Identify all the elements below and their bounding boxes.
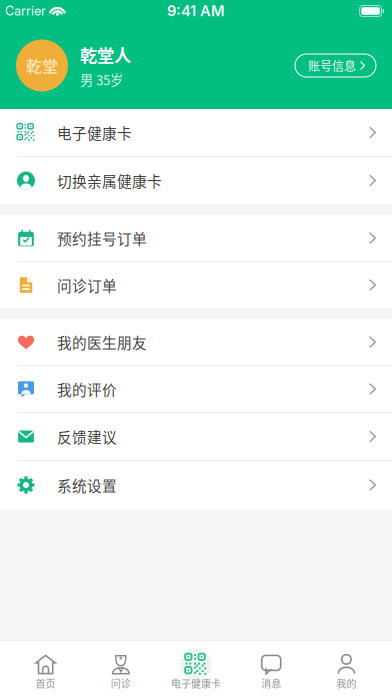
staticText: 系统设置 — [57, 474, 117, 496]
button[interactable]: 预约挂号订单 — [0, 215, 392, 262]
button[interactable]: 账号信息 — [295, 54, 376, 77]
staticText: 电子健康卡 — [171, 676, 221, 690]
staticText: 电子健康卡 — [57, 122, 132, 143]
staticText: 乾堂 — [26, 54, 58, 77]
button[interactable]: 我的医生朋友 — [0, 319, 392, 366]
staticText: 我的评价 — [57, 378, 117, 400]
staticText: 首页 — [36, 676, 56, 690]
staticText: 乾堂人 — [80, 42, 131, 67]
button[interactable]: 问诊订单 — [0, 262, 392, 308]
button[interactable]: 消息 — [234, 641, 309, 696]
staticText: Carrier — [5, 3, 46, 19]
button[interactable]: 我的 — [309, 641, 384, 696]
staticText: 问诊订单 — [57, 274, 117, 296]
staticText: 男 35岁 — [80, 70, 123, 89]
staticText: 问诊 — [111, 676, 131, 690]
staticText: 我的医生朋友 — [57, 331, 147, 353]
staticText: 消息 — [261, 676, 281, 690]
button[interactable]: 问诊 — [83, 641, 158, 696]
staticText: 9:41 AM — [167, 2, 225, 20]
button[interactable]: 我的评价 — [0, 366, 392, 413]
staticText: 账号信息 — [308, 57, 356, 74]
staticText: 反馈建议 — [57, 426, 117, 447]
button[interactable]: 首页 — [8, 641, 83, 696]
staticText: 预约挂号订单 — [57, 227, 147, 249]
button[interactable]: 系统设置 — [0, 461, 392, 509]
staticText: 切换亲属健康卡 — [57, 170, 162, 191]
staticText: 我的 — [336, 676, 356, 690]
button[interactable]: 切换亲属健康卡 — [0, 157, 392, 204]
button[interactable]: 电子健康卡 — [158, 641, 234, 696]
button[interactable]: 反馈建议 — [0, 413, 392, 461]
button[interactable]: 电子健康卡 — [0, 109, 392, 157]
